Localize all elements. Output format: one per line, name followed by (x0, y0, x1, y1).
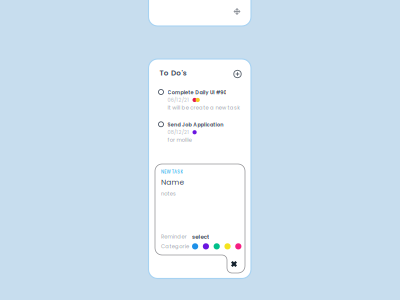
button[interactable]: Category colour (192, 243, 198, 249)
staticText: notes (161, 190, 176, 197)
staticText: Name (161, 177, 185, 187)
staticText: It will be create a new task (167, 104, 240, 111)
staticText: 08/12/21 (167, 129, 189, 136)
staticText: NEW TASK (161, 169, 183, 175)
staticText: Complete Daily UI #90 (167, 89, 226, 96)
staticText: Reminder (161, 233, 187, 240)
button[interactable]: Category colour (224, 243, 231, 249)
button[interactable]: Category colour (203, 243, 209, 249)
staticText: select (192, 233, 209, 241)
button[interactable]: Close (227, 257, 241, 271)
staticText: Categorie (161, 243, 189, 250)
button[interactable]: select (192, 233, 212, 241)
button[interactable]: Send Job Application (158, 121, 250, 144)
button[interactable]: Add task (231, 67, 244, 80)
button[interactable]: Category colour (235, 243, 241, 249)
staticText: 06/12/21 (167, 96, 189, 103)
staticText: for mollie (167, 136, 192, 144)
button[interactable]: Complete Daily UI #90 (158, 89, 250, 111)
button[interactable]: Category colour (214, 243, 220, 249)
staticText: Send Job Application (167, 121, 223, 128)
staticText: To Do's (159, 68, 187, 78)
